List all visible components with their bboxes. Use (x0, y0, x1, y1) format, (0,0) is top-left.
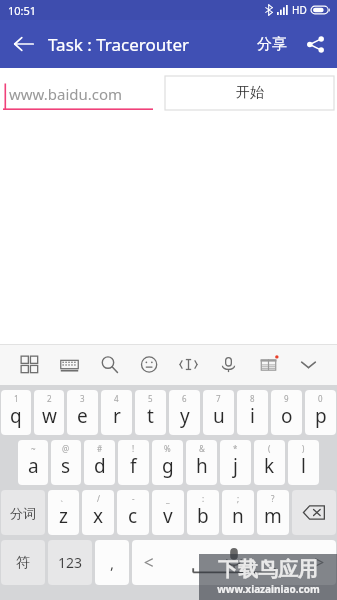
staticText: Task : Tracerouter (48, 33, 190, 56)
staticText: 1 (14, 393, 19, 404)
button[interactable]: Voice input (213, 344, 243, 385)
staticText: i (250, 403, 255, 429)
staticText: ? (271, 493, 275, 504)
staticText: 3 (80, 393, 85, 404)
staticText: 、 (60, 493, 68, 503)
staticText: h (196, 453, 208, 479)
staticText: s (61, 453, 71, 479)
staticText: * (233, 443, 238, 454)
button[interactable]: # (84, 440, 115, 485)
button[interactable]: Back (0, 20, 48, 68)
staticText: ; (237, 493, 240, 504)
staticText: g (162, 453, 174, 479)
button[interactable]: ( (254, 440, 285, 485)
staticText: w (42, 403, 57, 429)
staticText: 下载鸟应用 (218, 557, 318, 582)
staticText: r (113, 403, 121, 429)
staticText: f (130, 453, 137, 479)
staticText: q (10, 403, 22, 429)
button[interactable]: , (95, 540, 129, 585)
button[interactable]: 符 (1, 540, 45, 585)
button[interactable]: 开始 (165, 76, 334, 110)
button[interactable]: 、 (48, 490, 79, 535)
button[interactable]: ~ (18, 440, 48, 485)
staticText: ~ (31, 443, 36, 454)
button[interactable]: 7 (203, 390, 234, 435)
staticText: # (97, 443, 103, 454)
button[interactable]: Space (132, 540, 336, 585)
button[interactable]: Backspace (292, 490, 336, 535)
staticText: 2 (47, 393, 52, 404)
staticText: / (97, 493, 100, 504)
button[interactable]: 5 (135, 390, 166, 435)
staticText: 5 (148, 393, 153, 404)
button[interactable]: 0 (305, 390, 336, 435)
button[interactable]: 4 (101, 390, 132, 435)
staticText: , (110, 553, 115, 573)
button[interactable]: www.baidu.com (3, 76, 153, 110)
staticText: 分享 (257, 35, 287, 54)
button[interactable]: 8 (237, 390, 268, 435)
button[interactable]: ! (118, 440, 149, 485)
button[interactable]: Edit cursor (173, 344, 203, 385)
button[interactable]: * (220, 440, 251, 485)
button[interactable]: 6 (169, 390, 200, 435)
button[interactable]: 9 (271, 390, 302, 435)
button[interactable]: / (82, 490, 114, 535)
staticText: t (147, 403, 154, 429)
button[interactable]: Apps (14, 344, 44, 385)
button[interactable]: & (186, 440, 217, 485)
button[interactable]: % (152, 440, 183, 485)
button[interactable]: ) (288, 440, 319, 485)
staticText: v (163, 503, 173, 529)
staticText: 开始 (236, 84, 264, 102)
button[interactable]: Keyboard (54, 344, 84, 385)
staticText: m (264, 503, 282, 529)
staticText: ) (302, 443, 305, 454)
staticText: 123 (58, 553, 83, 572)
staticText: u (213, 403, 225, 429)
button[interactable]: @ (51, 440, 81, 485)
staticText: ! (132, 443, 135, 454)
staticText: % (164, 443, 171, 454)
staticText: y (180, 403, 190, 429)
staticText: b (197, 503, 209, 529)
staticText: - (132, 493, 135, 504)
button[interactable]: Hide keyboard (293, 344, 323, 385)
staticText: z (59, 503, 68, 529)
staticText: 分词 (10, 505, 36, 521)
staticText: e (77, 403, 88, 429)
staticText: p (315, 403, 327, 429)
staticText: _ (166, 493, 170, 504)
staticText: 7 (216, 393, 221, 404)
button[interactable]: ? (257, 490, 289, 535)
button[interactable]: Search (94, 344, 124, 385)
button[interactable]: _ (152, 490, 184, 535)
staticText: o (281, 403, 293, 429)
button[interactable]: 1 (1, 390, 31, 435)
staticText: HD (292, 3, 307, 17)
button[interactable]: ; (222, 490, 254, 535)
staticText: 6 (182, 393, 187, 404)
button[interactable]: 3 (67, 390, 98, 435)
button[interactable]: 123 (48, 540, 92, 585)
button[interactable]: Share (293, 20, 337, 68)
button[interactable]: 分享 (251, 20, 293, 68)
button[interactable]: - (117, 490, 149, 535)
staticText: k (264, 453, 275, 479)
button[interactable]: Theme (253, 344, 283, 385)
staticText: & (199, 443, 205, 454)
staticText: 8 (250, 393, 255, 404)
staticText: a (28, 453, 39, 479)
button[interactable]: 分词 (1, 490, 45, 535)
button[interactable]: Emoji (134, 344, 164, 385)
staticText: 0 (318, 393, 323, 404)
staticText: 4 (114, 393, 119, 404)
staticText: www.xiazainiao.com (217, 582, 320, 596)
button[interactable]: : (187, 490, 219, 535)
staticText: 10:51 (8, 3, 37, 18)
staticText: d (94, 453, 106, 479)
staticText: l (301, 453, 306, 479)
button[interactable]: 2 (34, 390, 64, 435)
staticText: www.baidu.com (9, 84, 123, 104)
